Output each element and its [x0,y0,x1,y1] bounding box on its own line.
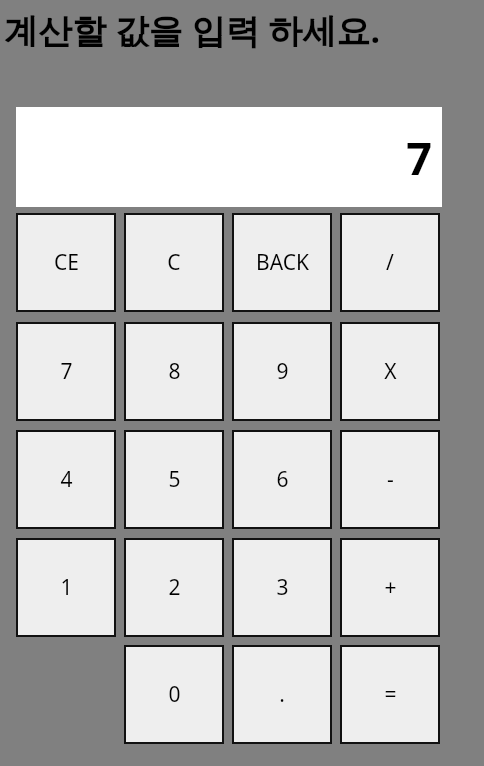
staticText: 7 [60,357,73,386]
staticText: 9 [276,357,289,386]
button[interactable]: + [340,538,440,637]
button[interactable]: . [232,645,332,744]
staticText: 0 [168,680,181,709]
staticText: 5 [168,465,181,494]
staticText: 3 [276,573,289,602]
button[interactable]: X [340,322,440,421]
staticText: + [384,573,397,602]
staticText: 7 [406,127,432,188]
button[interactable]: 0 [124,645,224,744]
button[interactable]: 9 [232,322,332,421]
staticText: X [384,357,397,386]
staticText: BACK [256,248,309,277]
staticText: 4 [60,465,73,494]
staticText: . [279,680,285,709]
staticText: 2 [168,573,181,602]
button[interactable]: / [340,213,440,312]
button[interactable]: 3 [232,538,332,637]
button[interactable]: 6 [232,430,332,529]
staticText: 6 [276,465,289,494]
staticText: - [387,465,394,494]
button[interactable]: 8 [124,322,224,421]
button[interactable]: CE [16,213,116,312]
button[interactable]: 4 [16,430,116,529]
staticText: = [384,680,397,709]
staticText: 계산할 값을 입력 하세요. [4,7,381,53]
staticText: 1 [60,573,73,602]
button[interactable]: 7 [16,322,116,421]
button[interactable]: 7 [16,107,442,207]
button[interactable]: BACK [232,213,332,312]
button[interactable]: - [340,430,440,529]
staticText: CE [54,248,79,277]
button[interactable]: = [340,645,440,744]
staticText: 8 [168,357,181,386]
button[interactable]: 2 [124,538,224,637]
button[interactable]: 1 [16,538,116,637]
staticText: / [386,248,394,277]
staticText: C [167,248,181,277]
button[interactable]: C [124,213,224,312]
button[interactable]: 5 [124,430,224,529]
